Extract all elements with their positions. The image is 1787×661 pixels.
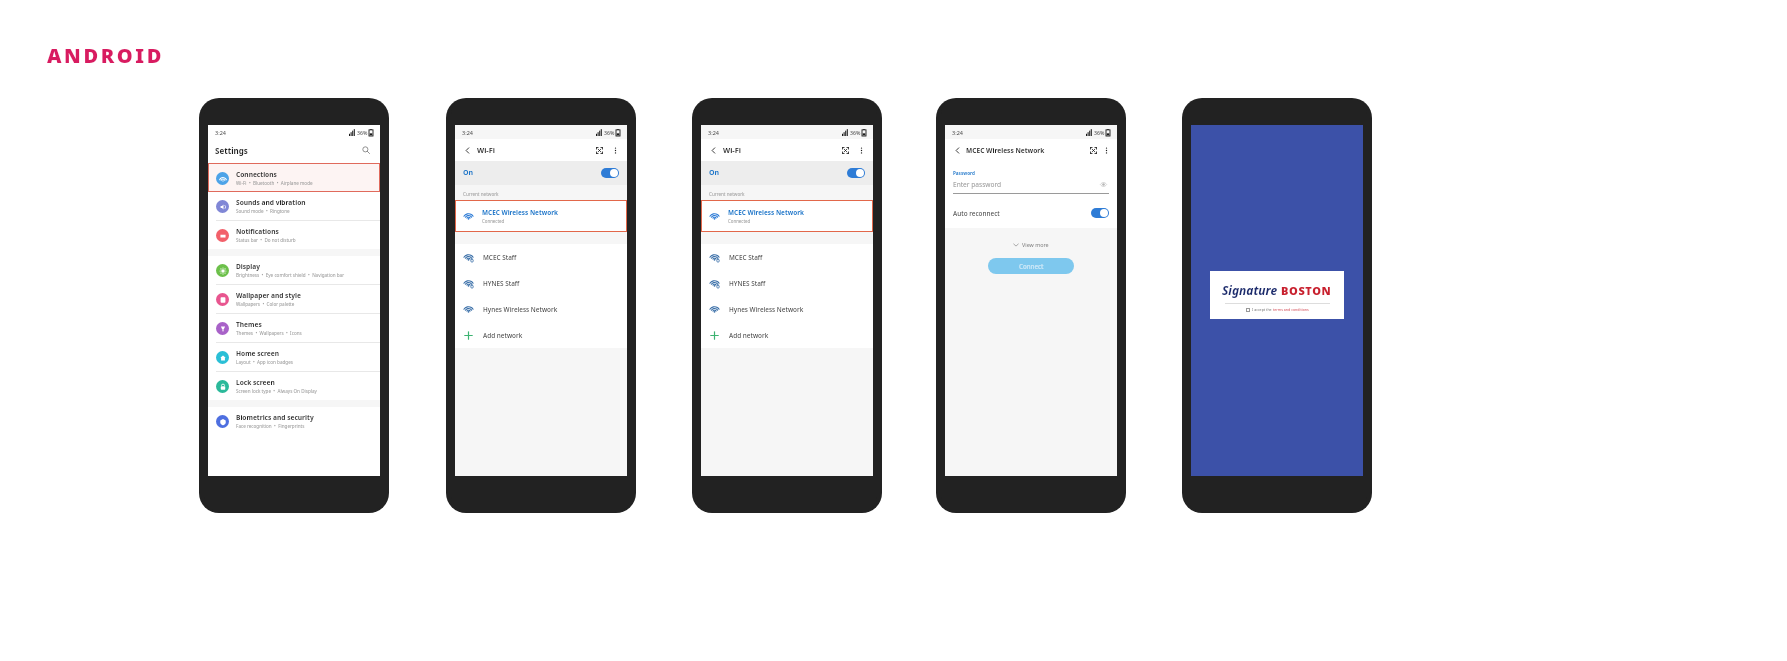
button[interactable]: Back xyxy=(461,144,473,156)
staticText: 3:24 xyxy=(708,129,719,136)
staticText: Status bar • Do not disturb xyxy=(236,237,296,243)
staticText: 3:24 xyxy=(215,129,226,136)
button[interactable]: Home screen xyxy=(208,343,380,371)
button[interactable]: Themes xyxy=(208,314,380,342)
staticText: Sounds and vibration xyxy=(236,198,306,207)
staticText: MCEC Wireless Network xyxy=(728,208,804,217)
button[interactable]: Back xyxy=(707,144,719,156)
button[interactable]: Auto reconnect xyxy=(945,204,1117,222)
button[interactable]: Wallpaper and style xyxy=(208,285,380,313)
staticText: I accept the xyxy=(1252,307,1273,312)
staticText: HYNES Staff xyxy=(483,279,520,288)
button[interactable]: HYNES Staff xyxy=(455,270,627,296)
staticText: Notifications xyxy=(236,227,279,236)
button[interactable]: Wi-Fi toggle xyxy=(847,168,865,178)
staticText: Hynes Wireless Network xyxy=(483,305,558,314)
button[interactable]: Back xyxy=(951,144,963,156)
staticText: Wallpaper and style xyxy=(236,291,301,300)
staticText: 36% xyxy=(357,129,368,136)
button[interactable]: MCEC Wireless Network xyxy=(701,200,873,232)
button[interactable]: View more xyxy=(945,241,1117,248)
staticText: BOSTON xyxy=(1281,283,1332,298)
staticText: MCEC Staff xyxy=(729,253,763,262)
button[interactable]: Signature xyxy=(1210,271,1344,319)
button[interactable]: On xyxy=(701,161,873,185)
staticText: Wallpapers • Color palette xyxy=(236,301,295,307)
staticText: Face recognition • Fingerprints xyxy=(236,423,305,429)
button[interactable]: Hynes Wireless Network xyxy=(701,296,873,322)
staticText: Layout • App icon badges xyxy=(236,359,293,365)
staticText: Current network xyxy=(463,191,499,197)
button[interactable]: Notifications xyxy=(208,221,380,249)
staticText: Biometrics and security xyxy=(236,413,314,422)
button[interactable]: Connect xyxy=(988,258,1074,274)
staticText: Brightness • Eye comfort shield • Naviga… xyxy=(236,272,345,278)
button[interactable]: Add network xyxy=(701,322,873,348)
staticText: Screen lock type • Always On Display xyxy=(236,388,317,394)
staticText: Auto reconnect xyxy=(953,209,1000,218)
staticText: terms and conditions xyxy=(1273,307,1309,312)
staticText: Connect xyxy=(1019,262,1044,270)
staticText: MCEC Staff xyxy=(483,253,517,262)
staticText: Themes xyxy=(236,320,262,329)
staticText: Settings xyxy=(215,145,248,156)
staticText: 3:24 xyxy=(462,129,473,136)
staticText: MCEC Wireless Network xyxy=(482,208,558,217)
button[interactable]: Scan QR code xyxy=(593,144,606,157)
button[interactable]: Lock screen xyxy=(208,372,380,400)
staticText: Add network xyxy=(729,331,769,340)
button[interactable]: Sounds and vibration xyxy=(208,192,380,220)
staticText: ANDROID xyxy=(47,42,165,69)
button[interactable]: Display xyxy=(208,256,380,284)
button[interactable]: Biometrics and security xyxy=(208,407,380,435)
staticText: Sound mode • Ringtone xyxy=(236,208,290,214)
button[interactable]: MCEC Staff xyxy=(455,244,627,270)
staticText: 36% xyxy=(1094,129,1105,136)
staticText: View more xyxy=(1022,241,1049,248)
staticText: Hynes Wireless Network xyxy=(729,305,804,314)
staticText: Enter password xyxy=(953,180,1002,189)
button[interactable]: Wi-Fi toggle xyxy=(601,168,619,178)
button[interactable]: Add network xyxy=(455,322,627,348)
staticText: Connections xyxy=(236,170,277,179)
staticText: Add network xyxy=(483,331,523,340)
button[interactable]: MCEC Staff xyxy=(701,244,873,270)
button[interactable]: Scan QR code xyxy=(1087,144,1099,156)
button[interactable]: More options xyxy=(1101,145,1111,155)
staticText: Wi-Fi • Bluetooth • Airplane mode xyxy=(236,180,313,186)
button[interactable]: HYNES Staff xyxy=(701,270,873,296)
button[interactable]: More options xyxy=(856,145,867,156)
staticText: Password xyxy=(953,170,975,176)
staticText: Home screen xyxy=(236,349,279,358)
staticText: Wi-Fi xyxy=(477,145,495,155)
button[interactable]: On xyxy=(455,161,627,185)
button[interactable]: Show password xyxy=(1098,179,1109,190)
staticText: Display xyxy=(236,262,260,271)
staticText: Current network xyxy=(709,191,745,197)
staticText: On xyxy=(709,168,720,178)
button[interactable]: MCEC Wireless Network xyxy=(455,200,627,232)
button[interactable]: Scan QR code xyxy=(839,144,852,157)
button[interactable]: More options xyxy=(610,145,621,156)
staticText: 36% xyxy=(604,129,615,136)
staticText: Connected xyxy=(482,218,505,224)
staticText: Wi-Fi xyxy=(723,145,741,155)
button[interactable]: Search xyxy=(359,143,373,157)
button[interactable]: Connections xyxy=(208,163,380,192)
staticText: Signature xyxy=(1222,282,1278,298)
button[interactable]: Hynes Wireless Network xyxy=(455,296,627,322)
staticText: MCEC Wireless Network xyxy=(966,146,1045,155)
staticText: Themes • Wallpapers • Icons xyxy=(236,330,302,336)
staticText: On xyxy=(463,168,474,178)
staticText: Lock screen xyxy=(236,378,275,387)
staticText: 36% xyxy=(850,129,861,136)
staticText: Connected xyxy=(728,218,751,224)
button[interactable]: Accept terms checkbox xyxy=(1246,308,1250,312)
button[interactable]: Wi-Fi toggle xyxy=(1091,208,1109,218)
staticText: 3:24 xyxy=(952,129,963,136)
staticText: HYNES Staff xyxy=(729,279,766,288)
